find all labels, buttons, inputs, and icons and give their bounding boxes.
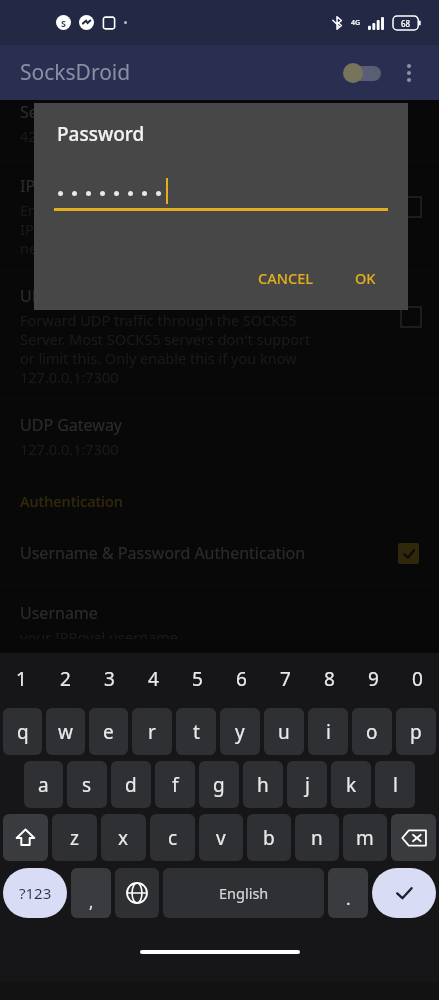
button[interactable]: u (264, 708, 304, 755)
staticText: Enable IPv6 forwarding. If the server su… (20, 200, 333, 258)
staticText: s (82, 772, 92, 798)
button[interactable]: n (295, 814, 339, 861)
staticText: S (61, 17, 66, 29)
staticText: e (103, 719, 114, 745)
button[interactable]: w (46, 708, 85, 755)
staticText: 0 (412, 666, 423, 692)
staticText: your IPRoyal username (20, 627, 179, 639)
staticText: Authentication (20, 491, 123, 511)
staticText: 6 (236, 666, 247, 692)
staticText: Forward UDP traffic through the SOCKS5 S… (20, 310, 311, 387)
button[interactable]: Shift (3, 814, 48, 861)
button[interactable]: g (199, 761, 239, 808)
button[interactable]: z (52, 814, 97, 861)
staticText: . (346, 887, 351, 910)
staticText: 8 (324, 666, 335, 692)
staticText: v (216, 825, 226, 851)
staticText: 1 (16, 666, 27, 692)
staticText: i (326, 719, 331, 745)
staticText: 42324 (20, 126, 62, 146)
staticText: UDP Gateway (20, 414, 123, 436)
button[interactable]: Backspace (391, 814, 436, 861)
staticText: o (366, 719, 378, 745)
button[interactable]: 1 (0, 653, 43, 705)
staticText: k (346, 772, 357, 798)
button[interactable]: m (343, 814, 387, 861)
staticText: 2 (60, 666, 71, 692)
button[interactable]: OK (345, 260, 386, 296)
button[interactable]: English (163, 868, 324, 918)
staticText: q (17, 719, 29, 745)
button[interactable]: c (150, 814, 195, 861)
button[interactable]: Username & Password Authentication (0, 533, 439, 573)
button[interactable]: UDP Relay (0, 271, 439, 399)
button[interactable]: i (308, 708, 348, 755)
staticText: CANCEL (258, 268, 313, 288)
button[interactable]: f (155, 761, 195, 808)
button[interactable]: q (3, 708, 42, 755)
button[interactable]: 3 (87, 653, 131, 705)
button[interactable]: Period (328, 868, 368, 918)
staticText: 9 (368, 666, 379, 692)
button[interactable]: Enter (372, 868, 436, 918)
staticText: Password (57, 121, 145, 147)
button[interactable]: IPv6 (0, 161, 439, 270)
button[interactable]: l (375, 761, 415, 808)
button[interactable]: Comma (71, 868, 111, 918)
staticText: SocksDroid (20, 58, 131, 87)
button[interactable]: Username (0, 586, 439, 653)
button[interactable]: r (132, 708, 172, 755)
button[interactable]: 9 (351, 653, 395, 705)
staticText: 4G (351, 18, 361, 28)
staticText: 7 (280, 666, 291, 692)
staticText: h (257, 772, 269, 798)
staticText: j (305, 772, 310, 798)
button[interactable]: 7 (263, 653, 307, 705)
button[interactable]: h (243, 761, 283, 808)
staticText: g (213, 772, 225, 798)
staticText: IPv6 (20, 175, 53, 197)
button[interactable]: b (247, 814, 291, 861)
button[interactable]: 4 (131, 653, 175, 705)
button[interactable]: e (89, 708, 128, 755)
button[interactable]: a (24, 761, 63, 808)
staticText: Username & Password Authentication (20, 542, 306, 564)
staticText: 3 (104, 666, 115, 692)
staticText: English (219, 883, 269, 903)
button[interactable]: 2 (43, 653, 87, 705)
staticText: a (38, 772, 49, 798)
staticText: Username (20, 602, 98, 624)
button[interactable]: Server Port (0, 101, 439, 160)
button[interactable]: y (220, 708, 260, 755)
staticText: f (172, 772, 179, 798)
button[interactable]: 0 (395, 653, 439, 705)
staticText: , (89, 891, 94, 913)
button[interactable]: ?123 (3, 868, 67, 918)
button[interactable]: 5 (175, 653, 219, 705)
staticText: y (235, 719, 245, 745)
staticText: w (58, 719, 73, 745)
button[interactable]: p (396, 708, 436, 755)
staticText: d (125, 772, 137, 798)
button[interactable]: k (331, 761, 371, 808)
button[interactable]: d (111, 761, 151, 808)
button[interactable]: t (176, 708, 216, 755)
staticText: ?123 (19, 883, 52, 903)
staticText: b (263, 825, 275, 851)
button[interactable]: o (352, 708, 392, 755)
button[interactable]: v (199, 814, 243, 861)
button[interactable]: Enable proxy toggle (337, 53, 389, 93)
staticText: 127.0.0.1:7300 (20, 439, 119, 459)
staticText: m (356, 825, 374, 851)
staticText: c (168, 825, 178, 851)
button[interactable]: 8 (307, 653, 351, 705)
button[interactable]: Change language (115, 868, 159, 918)
button[interactable]: CANCEL (248, 260, 323, 296)
staticText: 5 (192, 666, 203, 692)
button[interactable]: UDP Gateway (0, 400, 439, 473)
button[interactable]: j (287, 761, 327, 808)
button[interactable]: x (101, 814, 146, 861)
button[interactable]: s (67, 761, 107, 808)
button[interactable]: More options (389, 51, 429, 95)
button[interactable]: 6 (219, 653, 263, 705)
